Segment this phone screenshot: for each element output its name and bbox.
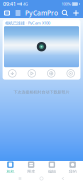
staticText: 相机已连接 · PyCam X100	[5, 20, 50, 25]
button[interactable]: 相机	[0, 162, 21, 174]
staticText: 09:41	[3, 0, 16, 8]
staticText: PyCamPro	[25, 9, 58, 17]
staticText: 下次连接相机时自动下载新照片	[13, 90, 69, 94]
staticText: 4G	[23, 1, 28, 7]
button[interactable]: Add	[70, 8, 81, 18]
button[interactable]: 编辑	[41, 162, 62, 174]
button[interactable]: Remote shoot	[1, 8, 12, 18]
button[interactable]: Settings	[61, 69, 80, 78]
button[interactable]: 我的	[62, 162, 83, 174]
button[interactable]: Recents	[14, 173, 26, 183]
staticText: 100%	[61, 1, 70, 7]
button[interactable]: 图库	[21, 162, 42, 174]
button[interactable]: Search	[59, 8, 70, 18]
button[interactable]: Back	[57, 173, 69, 183]
staticText: 相机	[6, 169, 14, 174]
button[interactable]: Camera list	[12, 8, 23, 18]
button[interactable]: Share	[41, 69, 61, 78]
button[interactable]: Download	[3, 69, 22, 78]
button[interactable]: Live view	[22, 69, 41, 78]
staticText: 图库	[27, 169, 35, 174]
staticText: 我的	[69, 169, 77, 174]
button[interactable]: Home	[35, 173, 47, 183]
staticText: 编辑	[48, 169, 56, 174]
